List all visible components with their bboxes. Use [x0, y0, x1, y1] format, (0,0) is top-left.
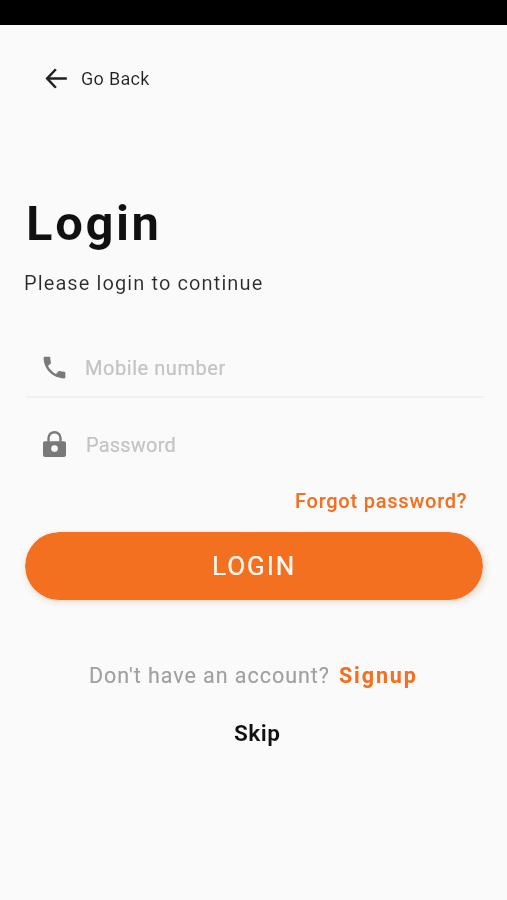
button[interactable]: Signup — [339, 663, 418, 688]
staticText: Mobile number — [85, 356, 226, 379]
staticText: Please login to continue — [24, 271, 264, 294]
button[interactable]: Go Back — [46, 68, 150, 89]
button[interactable]: Password — [43, 417, 483, 471]
staticText: Don't have an account? — [89, 663, 330, 688]
other: Go Back — [46, 68, 67, 89]
button[interactable]: Skip — [234, 720, 281, 746]
staticText: Go Back — [81, 68, 150, 89]
button[interactable]: Forgot password? — [295, 489, 468, 512]
staticText: Password — [86, 433, 176, 456]
button[interactable]: LOGIN — [25, 532, 483, 600]
staticText: LOGIN — [212, 551, 297, 581]
staticText: Login — [26, 195, 162, 252]
button[interactable]: Mobile number — [40, 340, 483, 394]
